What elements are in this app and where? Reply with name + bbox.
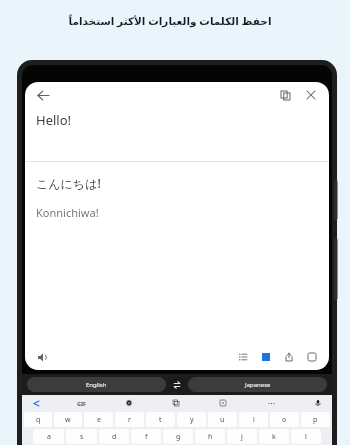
button[interactable]: Fullscreen: [304, 349, 320, 365]
button[interactable]: r: [115, 412, 144, 427]
staticText: Japanese: [245, 381, 271, 389]
button[interactable]: d: [99, 429, 129, 444]
staticText: a: [47, 432, 51, 442]
staticText: d: [112, 432, 117, 442]
button[interactable]: u: [208, 412, 237, 427]
button[interactable]: t: [146, 412, 175, 427]
button[interactable]: Japanese: [188, 377, 327, 392]
button[interactable]: Expand toolbar: [30, 397, 42, 409]
staticText: g: [176, 432, 181, 442]
button[interactable]: f: [131, 429, 161, 444]
button[interactable]: Voice input: [312, 397, 324, 409]
staticText: u: [220, 415, 225, 425]
button[interactable]: y: [177, 412, 206, 427]
button[interactable]: Swap languages: [166, 377, 188, 393]
button[interactable]: More options: [265, 397, 277, 409]
staticText: Hello!: [36, 111, 72, 129]
staticText: Konnichiwa!: [36, 205, 99, 220]
staticText: h: [208, 432, 213, 442]
staticText: f: [145, 432, 148, 442]
button[interactable]: Back: [34, 86, 52, 104]
staticText: p: [313, 415, 318, 425]
button[interactable]: Emoji: [217, 397, 229, 409]
button[interactable]: Copy: [276, 86, 294, 104]
button[interactable]: Saved: [258, 349, 274, 365]
staticText: r: [128, 415, 131, 425]
staticText: e: [97, 415, 101, 425]
button[interactable]: English: [27, 377, 166, 392]
button[interactable]: g: [163, 429, 193, 444]
button[interactable]: Transcript: [235, 349, 251, 365]
button[interactable]: p: [301, 412, 330, 427]
button[interactable]: Close: [302, 86, 320, 104]
button[interactable]: Listen: [34, 349, 50, 365]
button[interactable]: Keyboard settings: [123, 397, 135, 409]
button[interactable]: h: [195, 429, 225, 444]
staticText: j: [241, 432, 243, 442]
button[interactable]: s: [66, 429, 97, 444]
staticText: t: [159, 415, 162, 425]
button[interactable]: q: [24, 412, 52, 427]
staticText: w: [65, 415, 71, 425]
staticText: English: [86, 381, 107, 389]
staticText: y: [190, 415, 194, 425]
button[interactable]: w: [54, 412, 82, 427]
staticText: GIF: [77, 400, 87, 407]
staticText: q: [36, 415, 41, 425]
staticText: こんにちは!: [36, 175, 101, 191]
staticText: k: [272, 432, 276, 442]
button[interactable]: j: [227, 429, 257, 444]
button[interactable]: o: [270, 412, 299, 427]
button[interactable]: GIF: [77, 400, 87, 407]
staticText: l: [305, 432, 307, 442]
button[interactable]: e: [84, 412, 113, 427]
staticText: احفظ الكلمات والعبارات الأكثر استخداماً: [0, 14, 340, 28]
button[interactable]: Share: [281, 349, 297, 365]
button[interactable]: l: [291, 429, 321, 444]
button[interactable]: i: [239, 412, 268, 427]
button[interactable]: k: [259, 429, 289, 444]
staticText: s: [80, 432, 84, 442]
button[interactable]: Translate: [170, 397, 182, 409]
staticText: o: [282, 415, 287, 425]
staticText: i: [253, 415, 255, 425]
button[interactable]: a: [33, 429, 64, 444]
